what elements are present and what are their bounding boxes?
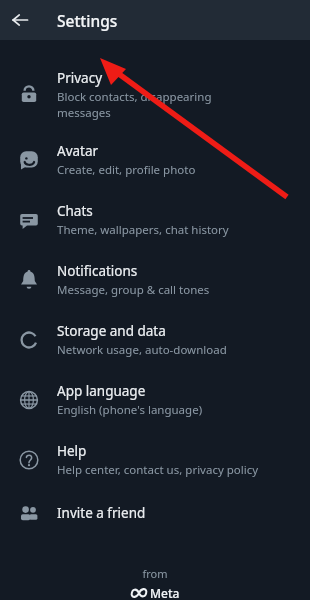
button[interactable]: Storage and data xyxy=(0,310,310,370)
staticText: App language xyxy=(57,382,146,400)
button[interactable]: Avatar xyxy=(0,130,310,190)
staticText: Block contacts, disappearing messages xyxy=(57,89,212,120)
button[interactable]: Help xyxy=(0,430,310,490)
button[interactable]: App language xyxy=(0,370,310,430)
staticText: Chats xyxy=(57,202,93,220)
staticText: Help center, contact us, privacy policy xyxy=(57,462,259,478)
staticText: Network usage, auto-download xyxy=(57,342,227,358)
staticText: Help xyxy=(57,442,87,460)
staticText: English (phone's language) xyxy=(57,402,203,418)
staticText: Privacy xyxy=(57,69,103,87)
button[interactable]: Privacy xyxy=(0,58,310,130)
staticText: Message, group & call tones xyxy=(57,282,210,298)
button[interactable]: Invite a friend xyxy=(0,490,310,536)
staticText: Avatar xyxy=(57,142,99,160)
staticText: Storage and data xyxy=(57,322,166,340)
staticText: Theme, wallpapers, chat history xyxy=(57,222,229,238)
staticText: Create, edit, profile photo xyxy=(57,162,196,178)
staticText: Notifications xyxy=(57,262,138,280)
staticText: from xyxy=(142,566,168,581)
staticText: Meta xyxy=(150,585,180,600)
staticText: Settings xyxy=(57,10,118,31)
button[interactable]: Back xyxy=(0,0,40,40)
staticText: Invite a friend xyxy=(57,504,146,522)
button[interactable]: Notifications xyxy=(0,250,310,310)
button[interactable]: Chats xyxy=(0,190,310,250)
